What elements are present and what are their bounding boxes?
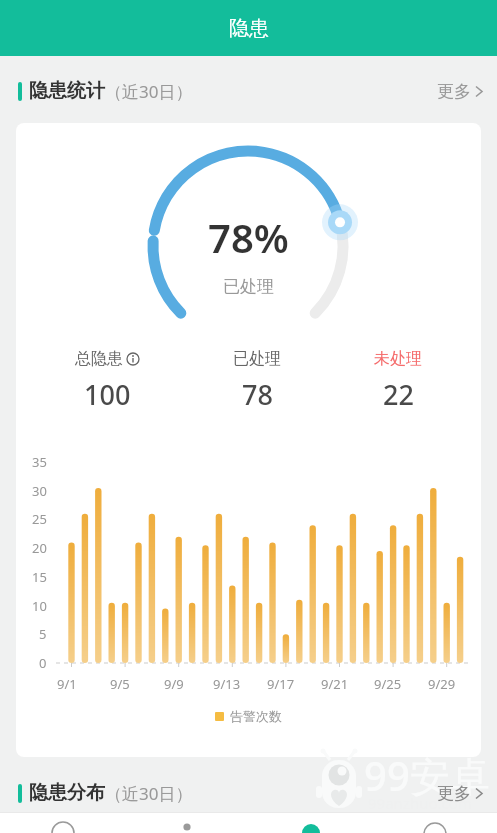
- staticText: 78: [242, 376, 273, 413]
- button[interactable]: 已处理: [197, 349, 317, 413]
- staticText: 隐患统计: [29, 79, 105, 103]
- staticText: 99安卓: [364, 748, 490, 803]
- staticText: 9/1: [57, 675, 77, 693]
- staticText: 更多: [437, 81, 471, 102]
- staticText: 已处理: [233, 349, 281, 369]
- staticText: 99anzhuo.com: [368, 793, 472, 813]
- staticText: 已处理: [223, 276, 274, 297]
- button[interactable]: [125, 812, 249, 833]
- staticText: 9/9: [164, 675, 184, 693]
- button[interactable]: [0, 812, 125, 833]
- staticText: 25: [32, 510, 47, 528]
- staticText: 更多: [437, 783, 471, 804]
- staticText: 9/13: [213, 675, 241, 693]
- staticText: 9/29: [428, 675, 456, 693]
- button[interactable]: 总隐患: [47, 349, 167, 413]
- button[interactable]: [373, 812, 497, 833]
- staticText: 隐患: [229, 16, 269, 41]
- staticText: 10: [32, 597, 47, 615]
- staticText: 30: [32, 482, 47, 500]
- staticText: 9/25: [374, 675, 402, 693]
- staticText: 总隐患: [75, 349, 123, 369]
- staticText: 78%: [208, 210, 289, 264]
- staticText: 告警次数: [230, 708, 282, 724]
- staticText: 9/21: [321, 675, 349, 693]
- button[interactable]: 更多: [437, 81, 483, 102]
- staticText: （近30日）: [105, 782, 193, 805]
- staticText: 9/5: [110, 675, 130, 693]
- button[interactable]: 更多: [437, 783, 483, 804]
- staticText: 0: [39, 654, 47, 672]
- staticText: 20: [32, 539, 47, 557]
- staticText: 22: [383, 376, 414, 413]
- button[interactable]: [249, 812, 373, 833]
- staticText: 100: [84, 376, 131, 413]
- staticText: 未处理: [374, 349, 422, 369]
- staticText: 隐患分布: [29, 781, 105, 805]
- staticText: （近30日）: [105, 80, 193, 103]
- staticText: 15: [32, 568, 47, 586]
- staticText: 9/17: [267, 675, 295, 693]
- staticText: 5: [39, 625, 47, 643]
- staticText: 35: [32, 453, 47, 471]
- button[interactable]: 未处理: [338, 349, 458, 413]
